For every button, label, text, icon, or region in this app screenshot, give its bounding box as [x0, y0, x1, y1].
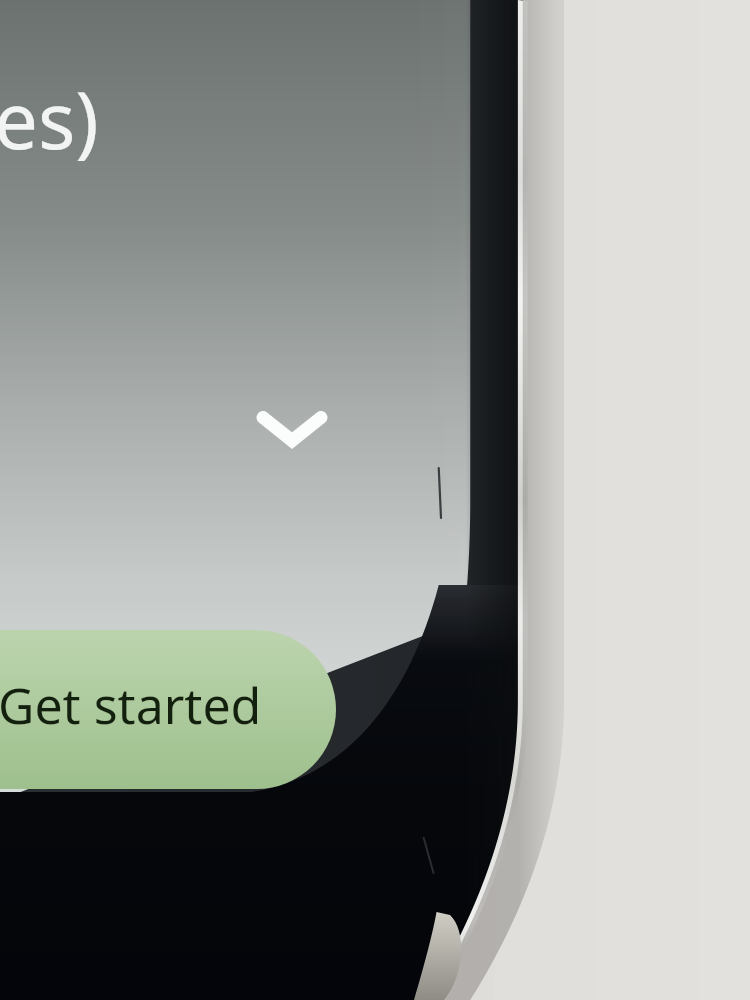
staticText: es)	[0, 66, 99, 172]
button[interactable]: Scroll down	[250, 392, 334, 464]
button[interactable]: Get started	[0, 630, 336, 789]
staticText: Get started	[0, 671, 262, 739]
